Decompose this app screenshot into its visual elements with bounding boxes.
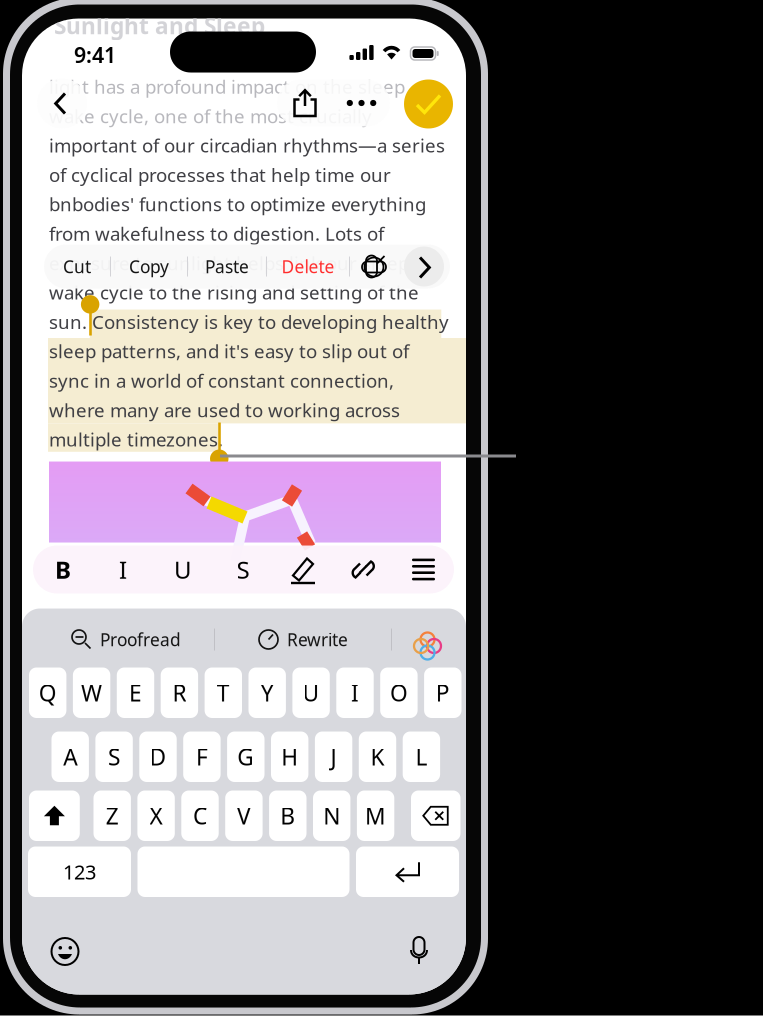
- button[interactable]: T: [205, 667, 242, 718]
- button[interactable]: More: [333, 79, 390, 126]
- staticText: multiple timezones.: [49, 427, 223, 452]
- button[interactable]: Proofread: [38, 618, 214, 660]
- staticText: T: [217, 678, 230, 708]
- button[interactable]: Cut: [44, 244, 110, 288]
- button[interactable]: Strikethrough: [213, 545, 273, 593]
- button[interactable]: O: [380, 667, 418, 718]
- button[interactable]: Paste: [188, 244, 266, 288]
- staticText: S: [108, 742, 120, 772]
- button[interactable]: R: [161, 667, 198, 718]
- button[interactable]: V: [225, 790, 263, 841]
- staticText: sun. Consistency is key to developing he…: [49, 309, 449, 334]
- button[interactable]: space: [137, 846, 349, 897]
- button[interactable]: Apple Intelligence: [392, 618, 450, 660]
- staticText: J: [331, 742, 337, 772]
- staticText: 9:41: [74, 40, 116, 69]
- button[interactable]: D: [139, 731, 177, 782]
- staticText: important of our circadian rhythms—a ser…: [49, 133, 445, 158]
- staticText: Copy: [129, 255, 169, 278]
- staticText: K: [370, 742, 384, 772]
- staticText: S: [236, 554, 249, 585]
- button[interactable]: Highlight: [273, 545, 333, 593]
- staticText: U: [303, 678, 320, 708]
- button[interactable]: More actions: [398, 244, 450, 288]
- staticText: F: [196, 742, 208, 772]
- button[interactable]: Y: [248, 667, 286, 718]
- button[interactable]: H: [271, 731, 308, 782]
- staticText: bnbodies' functions to optimize everythi…: [49, 192, 426, 216]
- staticText: Rewrite: [287, 628, 348, 651]
- button[interactable]: Writing Tools: [350, 244, 398, 288]
- button[interactable]: L: [403, 731, 440, 782]
- staticText: sync in a world of constant connection,: [49, 368, 394, 393]
- staticText: Paste: [205, 255, 249, 278]
- button[interactable]: K: [359, 731, 396, 782]
- button[interactable]: Emoji: [42, 928, 88, 974]
- button[interactable]: I: [336, 667, 374, 718]
- button[interactable]: Done: [404, 79, 453, 128]
- button[interactable]: F: [183, 731, 221, 782]
- staticText: Z: [106, 801, 119, 831]
- button[interactable]: M: [357, 790, 394, 841]
- button[interactable]: C: [181, 790, 219, 841]
- staticText: Cut: [63, 255, 91, 278]
- staticText: wake cycle, one of the most crucially: [49, 103, 372, 128]
- button[interactable]: Copy: [111, 244, 187, 288]
- button[interactable]: List: [393, 545, 454, 593]
- staticText: G: [237, 742, 254, 772]
- button[interactable]: A: [51, 731, 89, 782]
- staticText: exposure to sunlight helps link our slee…: [49, 250, 409, 275]
- button[interactable]: 123: [28, 846, 131, 897]
- staticText: L: [415, 742, 427, 772]
- button[interactable]: Back: [37, 78, 87, 128]
- staticText: M: [365, 801, 386, 831]
- staticText: 123: [63, 858, 96, 885]
- button[interactable]: return: [356, 846, 459, 897]
- button[interactable]: Link: [333, 545, 393, 593]
- button[interactable]: Shift: [29, 790, 80, 841]
- button[interactable]: Share: [277, 79, 333, 126]
- staticText: Y: [261, 678, 274, 708]
- staticText: I: [351, 678, 359, 708]
- button[interactable]: W: [73, 667, 110, 718]
- button[interactable]: X: [137, 790, 175, 841]
- button[interactable]: Underline: [153, 545, 213, 593]
- button[interactable]: S: [95, 731, 133, 782]
- staticText: where many are used to working across: [49, 397, 400, 422]
- button[interactable]: Dictate: [396, 928, 442, 974]
- staticText: A: [63, 742, 77, 772]
- button[interactable]: Z: [93, 790, 131, 841]
- button[interactable]: N: [313, 790, 350, 841]
- staticText: O: [390, 678, 408, 708]
- button[interactable]: Q: [29, 667, 66, 718]
- staticText: wake cycle to the rising and setting of …: [49, 280, 419, 305]
- button[interactable]: G: [227, 731, 264, 782]
- button[interactable]: J: [315, 731, 352, 782]
- button[interactable]: Rewrite: [215, 618, 391, 660]
- button[interactable]: Italic: [93, 545, 153, 593]
- staticText: P: [436, 678, 450, 708]
- staticText: U: [174, 554, 192, 585]
- staticText: N: [323, 801, 340, 831]
- staticText: Sunlight and Sleep: [54, 10, 265, 41]
- button[interactable]: U: [292, 667, 330, 718]
- button[interactable]: Delete: [411, 790, 460, 841]
- button[interactable]: B: [269, 790, 306, 841]
- staticText: H: [281, 742, 298, 772]
- staticText: light has a profound impact on the sleep: [49, 74, 405, 99]
- staticText: Q: [39, 678, 57, 708]
- button[interactable]: P: [424, 667, 461, 718]
- staticText: R: [172, 678, 186, 708]
- staticText: I: [119, 554, 127, 585]
- button[interactable]: Delete: [267, 244, 349, 288]
- staticText: D: [149, 742, 166, 772]
- staticText: C: [193, 801, 207, 831]
- staticText: from wakefulness to digestion. Lots of: [49, 221, 384, 246]
- staticText: Proofread: [100, 628, 181, 651]
- staticText: sleep patterns, and it's easy to slip ou…: [49, 339, 409, 363]
- staticText: W: [81, 678, 102, 708]
- staticText: E: [129, 678, 142, 708]
- button[interactable]: Bold: [33, 545, 93, 593]
- staticText: of cyclical processes that help time our: [49, 162, 391, 187]
- button[interactable]: E: [117, 667, 154, 718]
